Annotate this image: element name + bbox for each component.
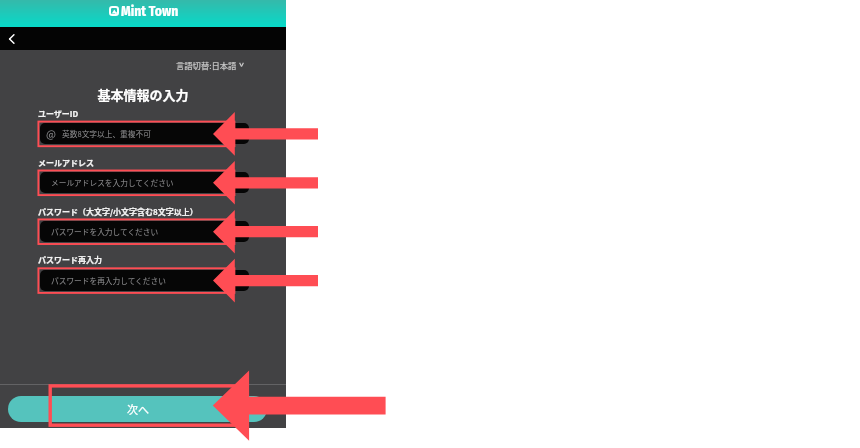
staticText: パスワード再入力: [38, 254, 102, 266]
staticText: メールアドレスを入力してください: [51, 177, 174, 188]
button[interactable]: 次へ: [8, 396, 267, 422]
button[interactable]: 言語切替:日本語: [176, 59, 244, 71]
staticText: メールアドレス: [38, 157, 94, 169]
button[interactable]: パスワードを再入力してください: [40, 270, 249, 291]
staticText: @: [46, 126, 56, 141]
button[interactable]: メールアドレスを入力してください: [40, 172, 249, 193]
staticText: ユーザーID: [38, 108, 79, 120]
staticText: 次へ: [127, 401, 149, 417]
staticText: パスワードを再入力してください: [51, 275, 166, 286]
staticText: 基本情報の入力: [0, 85, 286, 104]
button[interactable]: @: [40, 123, 249, 144]
staticText: 言語切替:日本語: [176, 59, 237, 71]
staticText: 英数8文字以上、重複不可: [62, 128, 151, 139]
staticText: Mint Town: [121, 3, 179, 19]
button[interactable]: パスワードを入力してください: [40, 221, 249, 242]
staticText: パスワード（大文字/小文字含む8文字以上）: [38, 206, 198, 218]
staticText: パスワードを入力してください: [51, 226, 159, 237]
button[interactable]: Back: [0, 27, 23, 50]
